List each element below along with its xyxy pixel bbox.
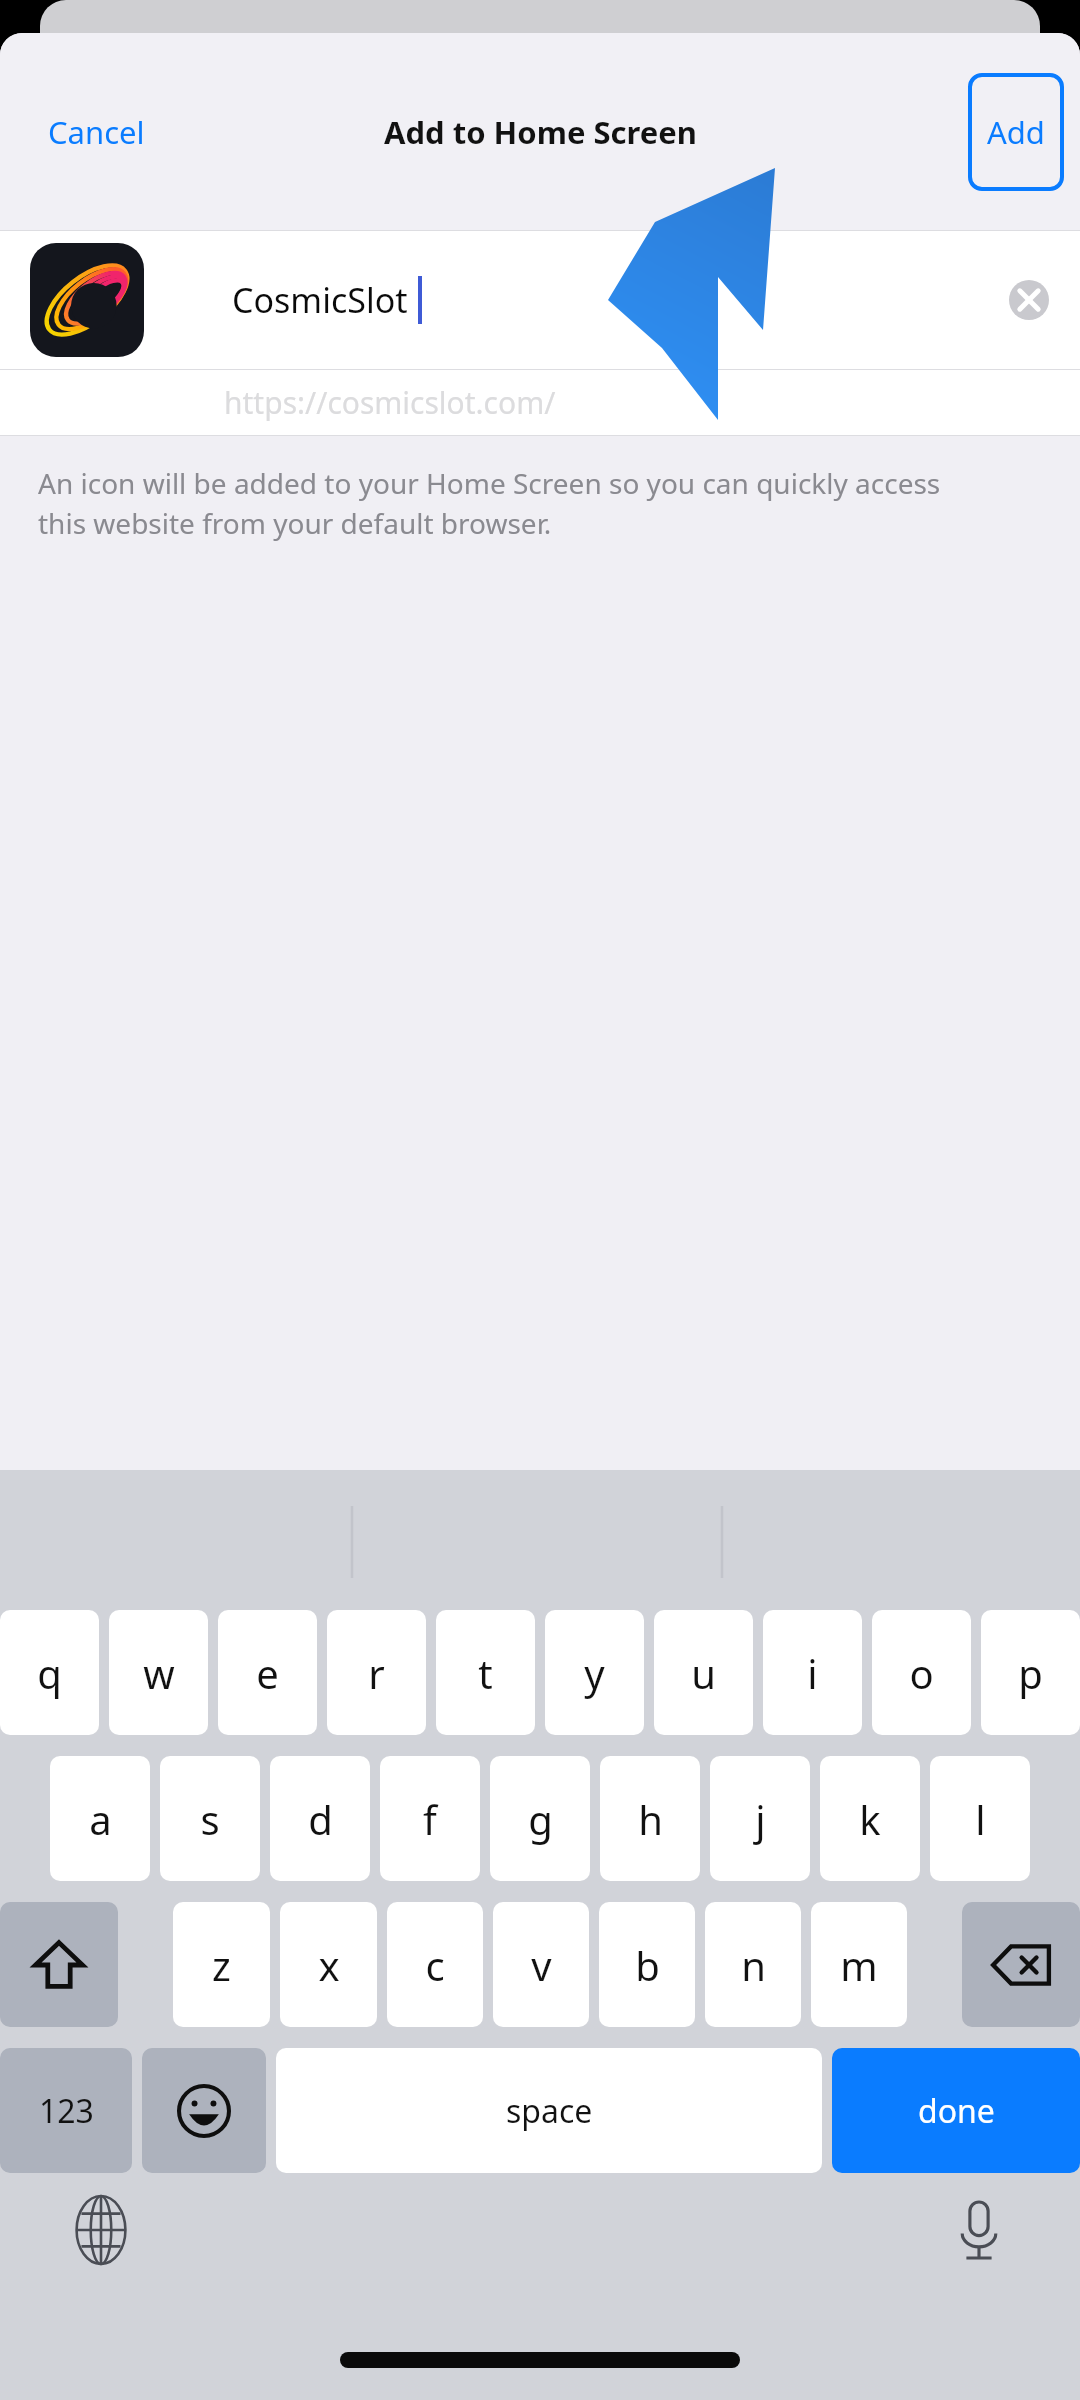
button[interactable]: https://cosmicslot.com/ <box>0 370 1080 435</box>
staticText: a <box>89 1792 112 1846</box>
button[interactable]: e <box>218 1610 317 1735</box>
button[interactable]: space <box>276 2048 822 2173</box>
staticText: CosmicSlot <box>232 277 408 323</box>
staticText: j <box>755 1792 766 1846</box>
button[interactable]: i <box>763 1610 862 1735</box>
button[interactable]: t <box>436 1610 535 1735</box>
staticText: p <box>1018 1646 1043 1700</box>
staticText: t <box>478 1646 493 1700</box>
button[interactable]: f <box>380 1756 480 1881</box>
button[interactable]: v <box>493 1902 589 2027</box>
staticText: An icon will be added to your Home Scree… <box>38 464 990 543</box>
staticText: c <box>425 1938 445 1992</box>
staticText: e <box>256 1646 279 1700</box>
staticText: k <box>859 1792 881 1846</box>
button[interactable]: x <box>280 1902 377 2027</box>
staticText: g <box>528 1792 553 1846</box>
button[interactable]: Cancel <box>18 95 175 169</box>
button[interactable]: a <box>50 1756 150 1881</box>
staticText: w <box>143 1646 175 1700</box>
staticText: z <box>212 1938 231 1992</box>
button[interactable]: g <box>490 1756 590 1881</box>
staticText: i <box>807 1646 818 1700</box>
button[interactable]: CosmicSlot <box>0 231 1080 369</box>
staticText: o <box>909 1646 934 1700</box>
staticText: r <box>368 1646 385 1700</box>
staticText: space <box>506 2089 593 2133</box>
staticText: l <box>975 1792 986 1846</box>
button[interactable]: 123 <box>0 2048 132 2173</box>
button[interactable]: Emoji <box>142 2048 266 2173</box>
staticText: b <box>635 1938 660 1992</box>
button[interactable]: Clear text <box>1001 272 1057 328</box>
staticText: https://cosmicslot.com/ <box>224 382 556 423</box>
staticText: y <box>584 1646 605 1700</box>
button[interactable]: r <box>327 1610 426 1735</box>
button[interactable]: w <box>109 1610 208 1735</box>
button[interactable]: c <box>387 1902 483 2027</box>
staticText: d <box>308 1792 333 1846</box>
staticText: n <box>741 1938 766 1992</box>
button[interactable]: m <box>811 1902 907 2027</box>
button[interactable]: Change keyboard language <box>62 2191 140 2269</box>
button[interactable]: y <box>545 1610 644 1735</box>
button[interactable]: n <box>705 1902 801 2027</box>
staticText: q <box>37 1646 62 1700</box>
staticText: f <box>423 1792 437 1846</box>
staticText: Cancel <box>48 111 145 153</box>
button[interactable]: h <box>600 1756 700 1881</box>
button[interactable]: b <box>599 1902 695 2027</box>
button[interactable]: p <box>981 1610 1080 1735</box>
staticText: u <box>691 1646 716 1700</box>
button[interactable]: z <box>173 1902 270 2027</box>
button[interactable]: done <box>832 2048 1080 2173</box>
staticText: x <box>318 1938 340 1992</box>
button[interactable]: d <box>270 1756 370 1881</box>
staticText: s <box>200 1792 220 1846</box>
button[interactable]: Shift <box>0 1902 118 2027</box>
button[interactable]: l <box>930 1756 1030 1881</box>
staticText: 123 <box>39 2089 94 2133</box>
button[interactable]: o <box>872 1610 971 1735</box>
staticText: m <box>840 1938 878 1992</box>
button[interactable]: Voice input <box>940 2191 1018 2269</box>
button[interactable]: u <box>654 1610 753 1735</box>
button[interactable]: Backspace <box>962 1902 1080 2027</box>
staticText: v <box>531 1938 552 1992</box>
button[interactable]: Add <box>968 73 1064 191</box>
button[interactable]: k <box>820 1756 920 1881</box>
staticText: h <box>638 1792 663 1846</box>
staticText: Add <box>987 111 1045 153</box>
staticText: done <box>918 2089 995 2133</box>
staticText: Add to Home Screen <box>384 111 697 153</box>
button[interactable]: s <box>160 1756 260 1881</box>
button[interactable]: q <box>0 1610 99 1735</box>
button[interactable]: j <box>710 1756 810 1881</box>
